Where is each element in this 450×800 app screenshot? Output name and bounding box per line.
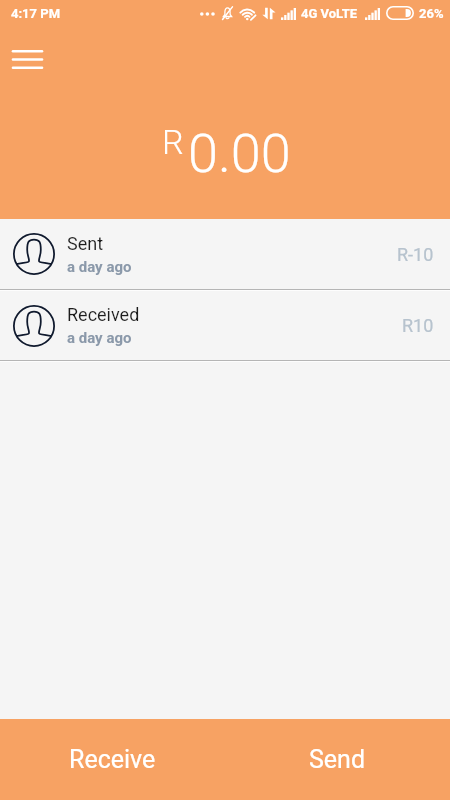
- staticText: R-10: [397, 244, 434, 265]
- staticText: 26%: [419, 6, 444, 21]
- staticText: Received: [67, 304, 140, 325]
- staticText: 0.00: [188, 122, 291, 185]
- staticText: Receive: [69, 745, 156, 774]
- staticText: Send: [309, 745, 366, 774]
- staticText: a day ago: [67, 329, 132, 347]
- staticText: R: [162, 122, 184, 162]
- button[interactable]: Open navigation menu: [2, 34, 52, 84]
- button[interactable]: Send: [225, 719, 450, 800]
- staticText: R10: [402, 315, 434, 336]
- button[interactable]: Receive: [0, 719, 225, 800]
- staticText: 4:17 PM: [11, 6, 61, 21]
- staticText: 4G VoLTE: [301, 6, 358, 21]
- staticText: Sent: [67, 233, 104, 254]
- button[interactable]: Sent: [0, 219, 450, 289]
- button[interactable]: Received: [0, 291, 450, 360]
- staticText: a day ago: [67, 258, 132, 276]
